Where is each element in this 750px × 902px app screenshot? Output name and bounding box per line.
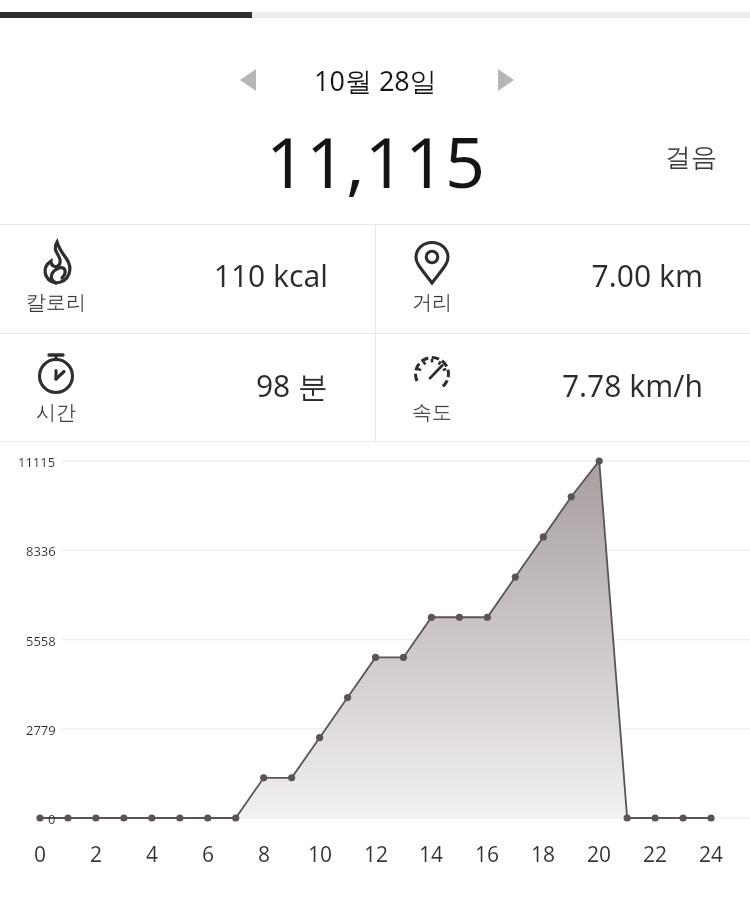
staticText: 10월 28일 xyxy=(314,62,437,99)
staticText: 2779 xyxy=(26,721,56,739)
staticText: 16 xyxy=(475,840,500,869)
staticText: 22 xyxy=(643,840,668,869)
staticText: 14 xyxy=(419,840,444,869)
button[interactable]: 시간 xyxy=(0,334,375,441)
staticText: 속도 xyxy=(412,400,452,425)
button[interactable]: Next day xyxy=(486,60,526,100)
button[interactable]: Previous day xyxy=(228,60,268,100)
staticText: 5558 xyxy=(26,632,56,650)
staticText: 거리 xyxy=(412,290,452,315)
staticText: 11115 xyxy=(18,453,56,471)
staticText: 98 분 xyxy=(255,365,328,406)
button[interactable]: 거리 xyxy=(376,224,750,333)
staticText: 시간 xyxy=(36,400,76,425)
staticText: 18 xyxy=(531,840,556,869)
staticText: 칼로리 xyxy=(26,290,86,315)
staticText: 0 xyxy=(48,810,56,828)
staticText: 2 xyxy=(90,840,103,869)
staticText: 7.00 km xyxy=(591,255,703,296)
staticText: 12 xyxy=(364,840,389,869)
staticText: 11,115 xyxy=(266,113,485,208)
staticText: 24 xyxy=(699,840,724,869)
staticText: 걸음 xyxy=(665,141,717,174)
staticText: 110 kcal xyxy=(213,255,328,296)
staticText: 8336 xyxy=(26,542,56,560)
staticText: 6 xyxy=(202,840,215,869)
staticText: 20 xyxy=(587,840,612,869)
staticText: 8 xyxy=(258,840,271,869)
button[interactable]: 칼로리 xyxy=(0,224,375,333)
staticText: 0 xyxy=(34,840,47,869)
staticText: 7.78 km/h xyxy=(561,365,703,406)
staticText: 4 xyxy=(146,840,159,869)
button[interactable]: 속도 xyxy=(376,334,750,441)
staticText: 10 xyxy=(308,840,333,869)
